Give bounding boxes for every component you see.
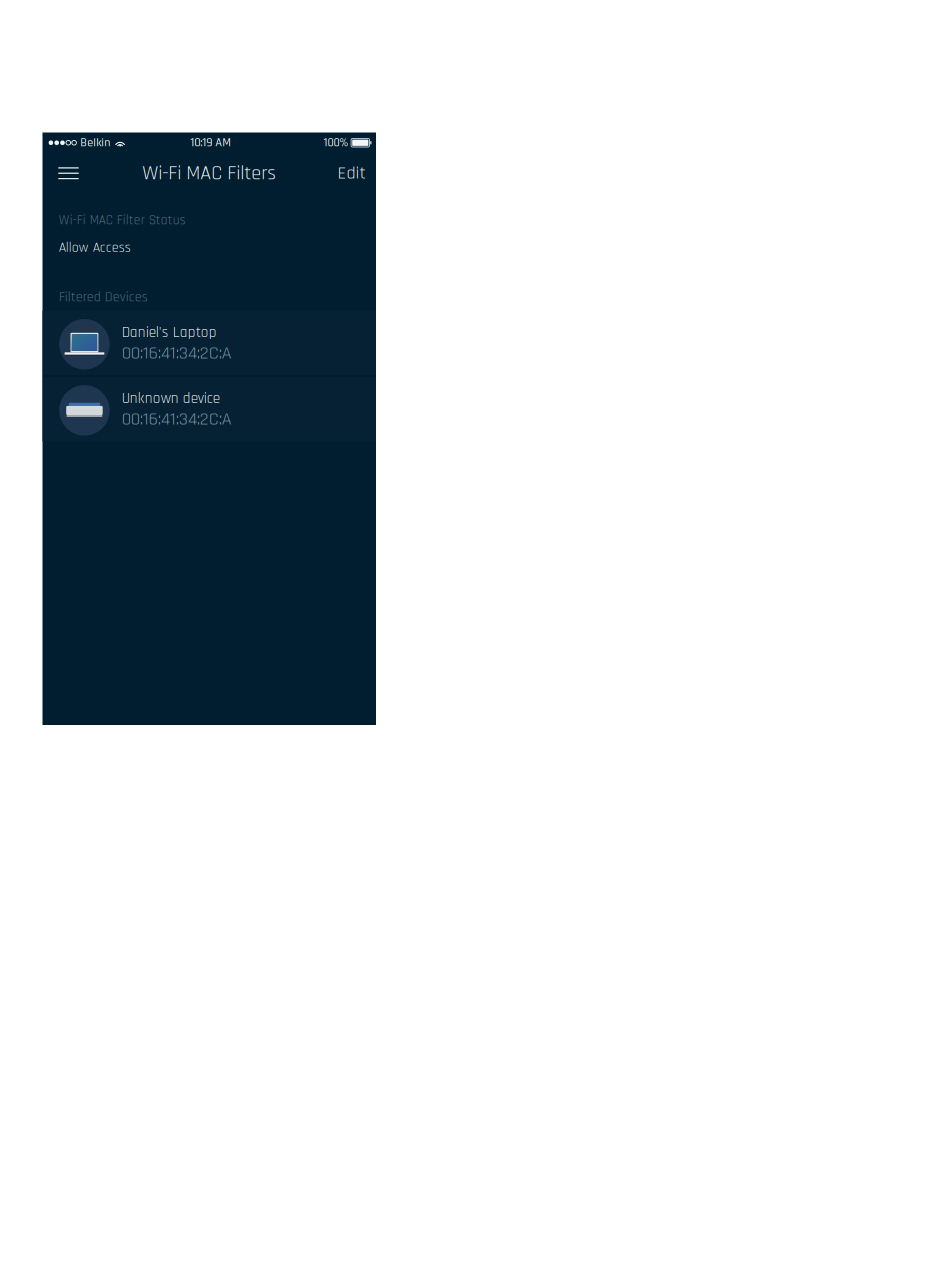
staticText: Belkin xyxy=(80,135,110,150)
staticText: Filtered Devices xyxy=(59,288,148,306)
staticText: 00:16:41:34:2C:A xyxy=(122,341,232,365)
button[interactable]: Unknown device xyxy=(42,377,376,441)
staticText: Daniel's Laptop xyxy=(122,323,217,342)
button[interactable]: Daniel's Laptop xyxy=(42,311,376,375)
staticText: 100% xyxy=(324,135,349,150)
button[interactable]: Menu xyxy=(48,152,88,194)
staticText: Wi-Fi MAC Filters xyxy=(142,160,276,186)
staticText: Unknown device xyxy=(122,389,220,408)
staticText: Allow Access xyxy=(59,239,131,257)
staticText: Edit xyxy=(337,162,365,185)
staticText: 00:16:41:34:2C:A xyxy=(122,407,232,431)
staticText: Wi-Fi MAC Filter Status xyxy=(59,212,186,229)
button[interactable]: Edit xyxy=(323,152,365,194)
staticText: 10:19 AM xyxy=(190,135,231,151)
